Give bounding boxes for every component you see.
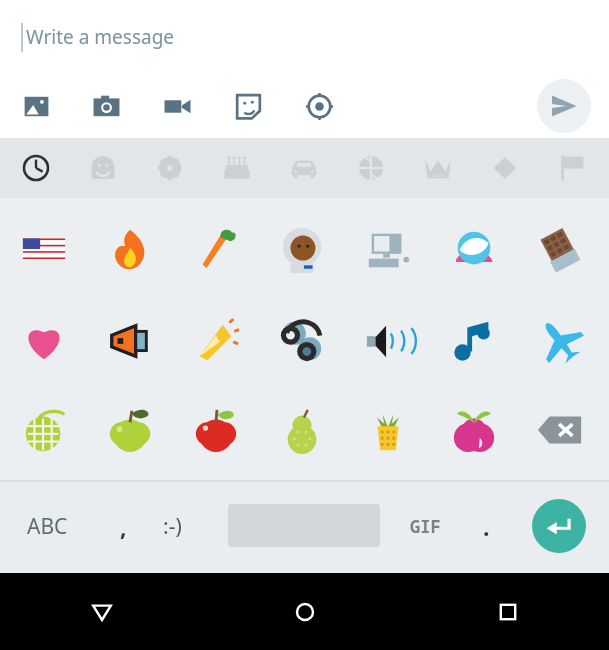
button[interactable]: Melon — [10, 396, 78, 464]
button[interactable]: Astronaut — [268, 216, 336, 284]
button[interactable]: Red apple — [182, 396, 250, 464]
button[interactable]: Symbols — [479, 142, 531, 194]
button[interactable]: Peach — [440, 396, 508, 464]
button[interactable]: Share location — [297, 84, 341, 128]
button[interactable]: Home — [203, 573, 406, 650]
staticText: ABC — [27, 512, 68, 541]
button[interactable]: Carrot — [182, 216, 250, 284]
button[interactable]: Pear — [268, 396, 336, 464]
staticText: . — [483, 511, 490, 542]
button[interactable]: ABC — [12, 491, 82, 561]
button[interactable]: Record video — [155, 84, 199, 128]
button[interactable]: Activities — [345, 142, 397, 194]
button[interactable]: Insert sticker — [226, 84, 270, 128]
staticText: :-) — [163, 512, 182, 541]
button[interactable]: US flag — [10, 216, 78, 284]
button[interactable]: Enter — [532, 499, 586, 553]
button[interactable]: Backspace — [526, 396, 594, 464]
button[interactable]: Flags — [546, 142, 598, 194]
button[interactable]: Insert photo — [14, 84, 58, 128]
button[interactable]: Pineapple — [354, 396, 422, 464]
button[interactable]: Nature — [144, 142, 196, 194]
button[interactable]: Crystal ball — [440, 216, 508, 284]
button[interactable]: Chocolate bar — [526, 216, 594, 284]
button[interactable]: Music note — [440, 307, 508, 375]
button[interactable]: , — [100, 491, 146, 561]
button[interactable]: Airplane — [526, 307, 594, 375]
button[interactable]: Headphones — [268, 307, 336, 375]
button[interactable]: Green apple — [96, 396, 164, 464]
button[interactable]: Heart — [10, 307, 78, 375]
button[interactable]: Send — [537, 79, 591, 133]
button[interactable]: Hide keyboard — [0, 573, 203, 650]
button[interactable]: Megaphone — [96, 307, 164, 375]
button[interactable]: Party horn — [182, 307, 250, 375]
button[interactable]: GIF — [400, 491, 450, 561]
button[interactable]: Computer — [354, 216, 422, 284]
button[interactable]: Objects — [412, 142, 464, 194]
button[interactable]: Smileys — [77, 142, 129, 194]
button[interactable]: Fire — [96, 216, 164, 284]
button[interactable]: Speaker — [354, 307, 422, 375]
button[interactable]: Recent — [10, 142, 62, 194]
button[interactable]: Travel — [278, 142, 330, 194]
button[interactable]: :-) — [146, 491, 198, 561]
button[interactable]: Take photo — [84, 84, 128, 128]
button[interactable]: Celebration — [211, 142, 263, 194]
staticText: , — [120, 511, 127, 542]
staticText: GIF — [410, 515, 441, 538]
button[interactable]: Recent apps — [406, 573, 609, 650]
button[interactable]: . — [464, 491, 508, 561]
staticText: Write a message — [26, 24, 175, 50]
